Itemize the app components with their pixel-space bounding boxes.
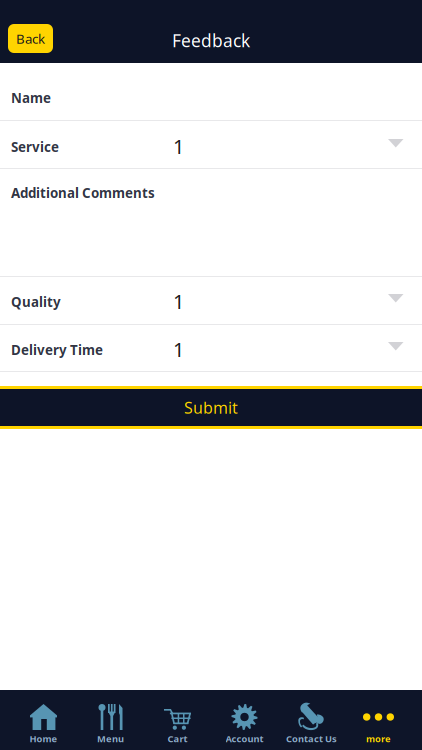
staticText: Menu [97, 732, 124, 745]
staticText: Submit [184, 397, 238, 418]
button[interactable]: Cart [144, 690, 211, 750]
staticText: Contact Us [286, 732, 337, 745]
button[interactable]: Menu [77, 690, 144, 750]
staticText: 1 [173, 288, 184, 315]
button[interactable]: more [345, 690, 412, 750]
button[interactable]: Contact Us [278, 690, 345, 750]
staticText: Quality [11, 293, 61, 311]
staticText: Delivery Time [11, 341, 103, 359]
staticText: more [366, 732, 391, 745]
staticText: Back [16, 30, 45, 47]
staticText: 1 [173, 336, 184, 363]
staticText: Account [225, 732, 263, 745]
button[interactable]: Submit [0, 386, 422, 429]
staticText: Cart [167, 732, 187, 745]
staticText: Feedback [172, 29, 250, 52]
button[interactable]: Home [10, 690, 77, 750]
staticText: Home [29, 732, 57, 745]
staticText: 1 [173, 133, 184, 160]
staticText: Name [11, 89, 51, 107]
button[interactable]: Account [211, 690, 278, 750]
staticText: Service [11, 138, 59, 156]
button[interactable]: Back [8, 24, 53, 53]
staticText: Additional Comments [11, 184, 155, 202]
